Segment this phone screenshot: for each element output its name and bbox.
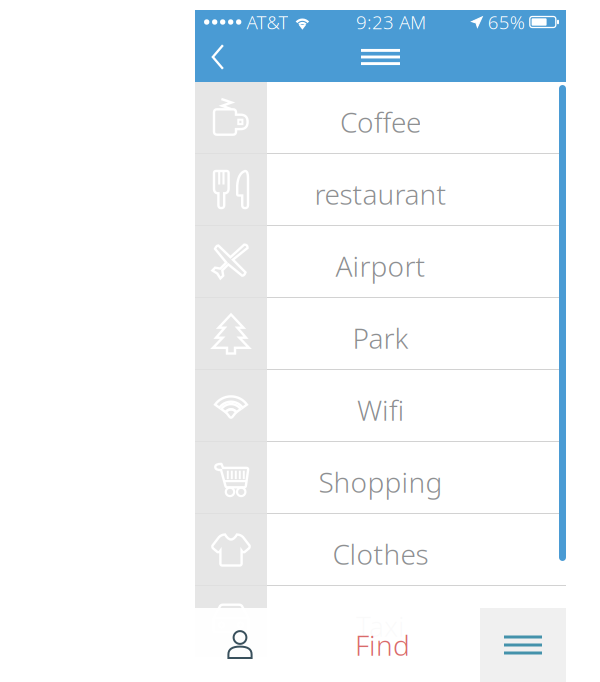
- button[interactable]: Back: [195, 34, 241, 80]
- button[interactable]: Menu: [480, 608, 566, 682]
- button[interactable]: restaurant: [195, 154, 566, 225]
- staticText: Airport: [335, 247, 425, 285]
- staticText: Park: [352, 319, 408, 357]
- button[interactable]: Find: [285, 608, 480, 682]
- staticText: restaurant: [314, 175, 446, 213]
- button[interactable]: Menu: [352, 34, 408, 80]
- button[interactable]: Coffee: [195, 82, 566, 153]
- staticText: Taxi: [356, 607, 405, 645]
- staticText: 9:23 AM: [356, 10, 426, 34]
- button[interactable]: Airport: [195, 226, 566, 297]
- staticText: Clothes: [332, 535, 428, 573]
- staticText: Coffee: [340, 103, 421, 141]
- staticText: Find: [355, 626, 410, 664]
- button[interactable]: Shopping: [195, 442, 566, 513]
- staticText: 65%: [483, 10, 530, 34]
- staticText: Shopping: [318, 463, 442, 501]
- button[interactable]: Park: [195, 298, 566, 369]
- button[interactable]: Profile: [195, 608, 285, 682]
- button[interactable]: Taxi: [195, 586, 566, 657]
- button[interactable]: Wifi: [195, 370, 566, 441]
- button[interactable]: Clothes: [195, 514, 566, 585]
- staticText: Wifi: [357, 391, 404, 429]
- staticText: AT&T: [241, 10, 288, 34]
